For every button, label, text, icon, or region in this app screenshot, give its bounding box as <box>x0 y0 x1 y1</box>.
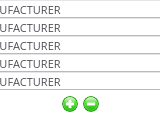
staticText: MANUFACTURER <box>0 56 61 71</box>
staticText: MANUFACTURER <box>0 2 61 17</box>
staticText: MANUFACTURER <box>0 20 61 35</box>
button[interactable]: MANUFACTURER <box>0 18 160 36</box>
button[interactable]: Add row <box>62 96 78 112</box>
button[interactable]: MANUFACTURER <box>0 72 160 90</box>
button[interactable]: MANUFACTURER <box>0 0 160 18</box>
button[interactable]: MANUFACTURER <box>0 54 160 72</box>
button[interactable]: MANUFACTURER <box>0 36 160 54</box>
staticText: MANUFACTURER <box>0 74 61 89</box>
button[interactable]: Remove row <box>83 96 99 112</box>
staticText: MANUFACTURER <box>0 38 61 53</box>
